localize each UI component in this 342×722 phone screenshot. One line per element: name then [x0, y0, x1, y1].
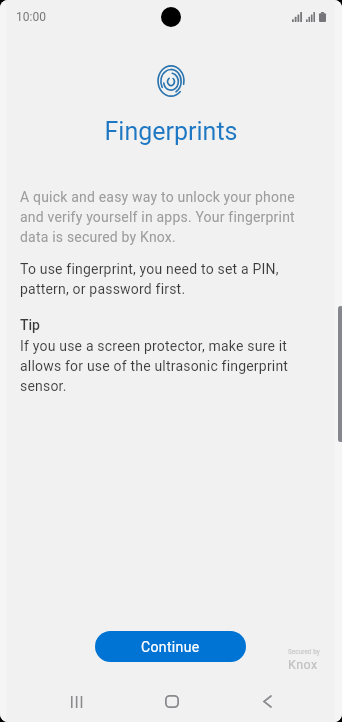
staticText: 10:00 [16, 10, 46, 24]
staticText: A quick and easy way to unlock your phon… [20, 189, 312, 245]
staticText: Knox [288, 657, 318, 672]
staticText: Continue [141, 639, 200, 655]
button[interactable]: Recent apps [53, 684, 99, 720]
staticText: To use fingerprint, you need to set a PI… [20, 261, 312, 297]
button[interactable]: Continue [95, 631, 246, 662]
staticText: Tip [20, 317, 40, 333]
staticText: Secured by [288, 648, 320, 655]
staticText: Fingerprints [0, 117, 342, 146]
staticText: If you use a screen protector, make sure… [20, 338, 312, 394]
button[interactable]: Home [149, 684, 195, 720]
button[interactable]: Back [245, 684, 291, 720]
